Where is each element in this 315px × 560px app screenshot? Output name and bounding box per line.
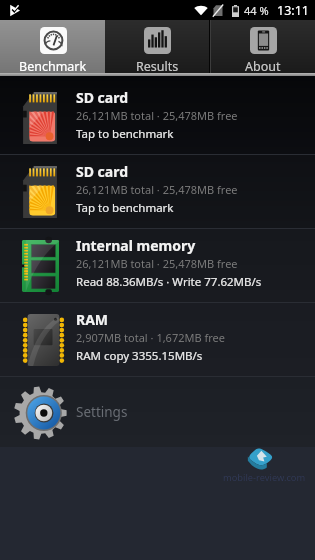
staticText: Tap to benchmark bbox=[76, 126, 174, 142]
staticText: Results bbox=[136, 58, 179, 73]
staticText: mobile-review.com bbox=[223, 471, 306, 484]
button[interactable]: Internal memory bbox=[0, 229, 315, 302]
staticText: SD card bbox=[76, 162, 129, 181]
staticText: Settings bbox=[76, 403, 128, 421]
staticText: RAM copy 3355.15MB/s bbox=[76, 348, 203, 364]
staticText: 26,121MB total · 25,478MB free bbox=[76, 256, 238, 271]
button[interactable]: SD card bbox=[0, 81, 315, 154]
staticText: Tap to benchmark bbox=[76, 200, 174, 216]
staticText: RAM bbox=[76, 310, 109, 329]
staticText: SD card bbox=[76, 88, 129, 107]
staticText: 2,907MB total · 1,672MB free bbox=[76, 330, 225, 345]
button[interactable]: Benchmark bbox=[0, 20, 105, 73]
staticText: 26,121MB total · 25,478MB free bbox=[76, 182, 238, 197]
staticText: 44 % bbox=[244, 3, 269, 18]
button[interactable]: RAM bbox=[0, 303, 315, 376]
button[interactable]: Settings bbox=[0, 377, 315, 447]
staticText: 13:11 bbox=[277, 2, 309, 19]
staticText: Read 88.36MB/s · Write 77.62MB/s bbox=[76, 274, 262, 290]
staticText: Benchmark bbox=[19, 58, 87, 73]
button[interactable]: Results bbox=[105, 20, 210, 73]
staticText: Internal memory bbox=[76, 236, 196, 255]
staticText: 26,121MB total · 25,478MB free bbox=[76, 108, 238, 123]
staticText: About bbox=[245, 58, 281, 73]
button[interactable]: About bbox=[210, 20, 315, 73]
button[interactable]: SD card bbox=[0, 155, 315, 228]
